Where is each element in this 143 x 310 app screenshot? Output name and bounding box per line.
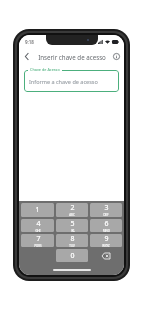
button[interactable]: 5 <box>56 219 88 232</box>
staticText: 9 <box>104 234 109 244</box>
staticText: JKL <box>71 229 75 232</box>
staticText: 7 <box>36 234 41 244</box>
staticText: TUV <box>69 244 75 247</box>
staticText: 6 <box>104 219 109 229</box>
staticText: 5 <box>70 219 75 229</box>
staticText: 9:18 <box>25 39 34 45</box>
staticText: MNO <box>103 229 110 232</box>
staticText: Inserir chave de acesso <box>38 53 106 61</box>
button[interactable]: 3 <box>90 203 122 217</box>
staticText: 0 <box>70 251 75 261</box>
staticText: GHI <box>35 229 41 232</box>
staticText: 1 <box>35 205 40 215</box>
staticText: DEF <box>103 213 109 217</box>
staticText: WXYZ <box>102 244 110 247</box>
staticText: 4 <box>36 219 41 229</box>
staticText: 8 <box>70 234 75 244</box>
button[interactable]: 9 <box>90 234 122 247</box>
staticText: Informe a chave de acesso <box>29 78 98 85</box>
button[interactable]: 4 <box>21 219 54 232</box>
staticText: 3 <box>104 203 109 213</box>
button[interactable]: Informações <box>108 49 124 64</box>
button[interactable]: 2 <box>56 203 88 217</box>
button[interactable]: Apagar <box>90 249 122 262</box>
button[interactable]: 7 <box>21 234 54 247</box>
button[interactable]: 1 <box>21 203 54 217</box>
staticText: ABC <box>69 213 75 217</box>
button[interactable]: Voltar <box>19 49 35 64</box>
staticText: PQRS <box>34 244 42 247</box>
staticText: 2 <box>70 203 75 213</box>
button[interactable]: 8 <box>56 234 88 247</box>
button[interactable]: 0 <box>56 249 88 262</box>
button[interactable]: Informe a chave de acesso <box>24 70 119 92</box>
staticText: Chave de Acesso <box>30 67 60 72</box>
button[interactable]: 6 <box>90 219 122 232</box>
